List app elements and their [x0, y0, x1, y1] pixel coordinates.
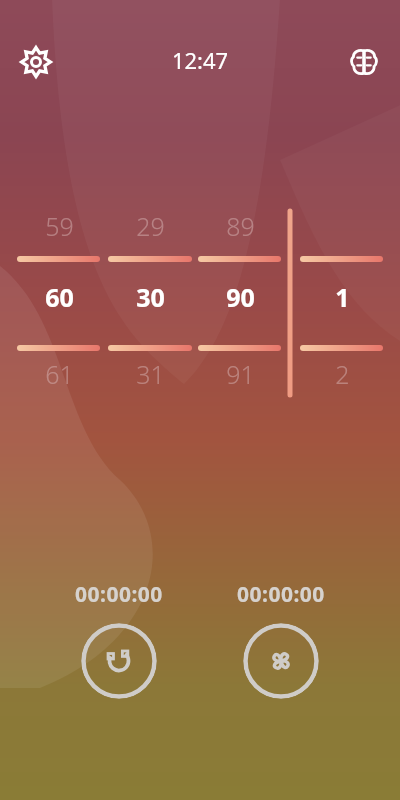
- button[interactable]: 31: [105, 357, 195, 397]
- button[interactable]: Settings: [12, 38, 60, 86]
- button[interactable]: 59: [14, 209, 104, 249]
- button[interactable]: 61: [14, 357, 104, 397]
- button[interactable]: 2: [297, 357, 387, 397]
- staticText: 61: [45, 357, 74, 391]
- button[interactable]: Fan timer: [243, 623, 319, 699]
- staticText: 00:00:00: [237, 580, 325, 609]
- button[interactable]: 60: [14, 280, 104, 320]
- button[interactable]: 1: [297, 280, 387, 320]
- staticText: 89: [226, 209, 255, 243]
- staticText: 12:47: [0, 45, 400, 75]
- button[interactable]: 89: [195, 209, 285, 249]
- button[interactable]: Magnet timer: [81, 623, 157, 699]
- staticText: 31: [136, 357, 165, 391]
- staticText: 00:00:00: [75, 580, 163, 609]
- staticText: 59: [45, 209, 74, 243]
- staticText: 29: [136, 209, 165, 243]
- button[interactable]: 90: [195, 280, 285, 320]
- staticText: 60: [45, 280, 74, 314]
- button[interactable]: 30: [105, 280, 195, 320]
- button[interactable]: 91: [195, 357, 285, 397]
- staticText: 1: [335, 280, 350, 314]
- staticText: 2: [335, 357, 350, 391]
- staticText: 91: [226, 357, 255, 391]
- staticText: 30: [136, 280, 165, 314]
- button[interactable]: Brain mode: [340, 38, 388, 86]
- button[interactable]: 29: [105, 209, 195, 249]
- staticText: 90: [226, 280, 255, 314]
